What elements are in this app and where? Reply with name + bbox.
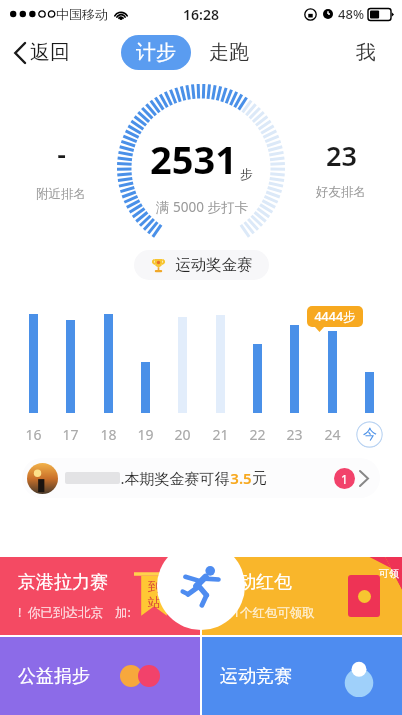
staticText: .本期奖金赛可得 bbox=[120, 468, 230, 488]
staticText: 4444步 bbox=[314, 308, 356, 325]
staticText: 18 bbox=[100, 425, 117, 444]
staticText: 17 bbox=[62, 425, 79, 444]
staticText: 有1个红包可领取 bbox=[220, 604, 315, 621]
staticText: 走跑 bbox=[209, 40, 249, 65]
button[interactable]: 我 bbox=[350, 34, 382, 71]
staticText: 2531 bbox=[150, 133, 237, 185]
button[interactable]: 20 bbox=[167, 298, 197, 448]
staticText: 运动奖金赛 bbox=[175, 255, 253, 275]
staticText: 16:28 bbox=[183, 5, 219, 24]
staticText: ! 你已到达北京 bbox=[18, 604, 103, 621]
staticText: 站 bbox=[148, 594, 161, 610]
staticText: 可领 bbox=[379, 567, 399, 580]
staticText: 21 bbox=[212, 425, 229, 444]
button[interactable]: 23 bbox=[300, 137, 382, 200]
button[interactable]: 公益捐步 bbox=[0, 637, 200, 715]
button[interactable]: 运动奖金赛 bbox=[134, 250, 269, 280]
staticText: 公益捐步 bbox=[18, 665, 90, 688]
button[interactable]: 运动竞赛 bbox=[202, 637, 402, 715]
button[interactable]: .本期奖金赛可得 bbox=[22, 458, 380, 498]
button[interactable]: - bbox=[20, 135, 102, 202]
staticText: 16 bbox=[25, 425, 42, 444]
staticText: 元 bbox=[252, 469, 267, 488]
button[interactable]: 计步 bbox=[121, 35, 191, 70]
staticText: 48% bbox=[338, 5, 364, 23]
button[interactable]: 17 bbox=[55, 298, 85, 448]
button[interactable]: 21 bbox=[205, 298, 235, 448]
staticText: 23 bbox=[286, 425, 303, 444]
staticText: 22 bbox=[249, 425, 266, 444]
staticText: - bbox=[57, 135, 66, 172]
button[interactable]: 24 bbox=[317, 298, 347, 448]
staticText: 我 bbox=[356, 40, 376, 65]
button[interactable]: 23 bbox=[279, 298, 309, 448]
button[interactable]: 开始运动 bbox=[157, 542, 245, 630]
staticText: 20 bbox=[174, 425, 191, 444]
button[interactable]: 运动红包 bbox=[202, 557, 402, 635]
staticText: 3.5 bbox=[230, 468, 252, 488]
button[interactable]: 京港拉力赛 bbox=[0, 557, 200, 635]
button[interactable]: 22 bbox=[242, 298, 272, 448]
staticText: 返回 bbox=[30, 40, 70, 65]
staticText: 1 bbox=[341, 471, 348, 487]
staticText: 步 bbox=[240, 166, 253, 182]
button[interactable]: 返回 bbox=[8, 36, 76, 69]
button[interactable]: 走跑 bbox=[205, 35, 253, 70]
staticText: 附近排名 bbox=[36, 186, 86, 202]
staticText: 到 bbox=[148, 578, 161, 594]
staticText: 满 5000 步打卡 bbox=[156, 198, 248, 216]
staticText: 19 bbox=[137, 425, 154, 444]
staticText: 今 bbox=[363, 426, 377, 444]
staticText: 23 bbox=[326, 137, 357, 174]
button[interactable]: 今 bbox=[354, 298, 384, 448]
button[interactable]: 19 bbox=[130, 298, 160, 448]
staticText: 好友排名 bbox=[316, 184, 366, 200]
staticText: 24 bbox=[324, 425, 341, 444]
staticText: 运动竞赛 bbox=[220, 665, 292, 688]
staticText: 加: bbox=[115, 604, 131, 621]
button[interactable]: 16 bbox=[18, 298, 48, 448]
button[interactable]: 18 bbox=[93, 298, 123, 448]
staticText: 中国移动 bbox=[56, 6, 108, 22]
staticText: 京港拉力赛 bbox=[18, 571, 108, 594]
staticText: 计步 bbox=[136, 40, 176, 65]
staticText: 运动红包 bbox=[220, 571, 292, 594]
